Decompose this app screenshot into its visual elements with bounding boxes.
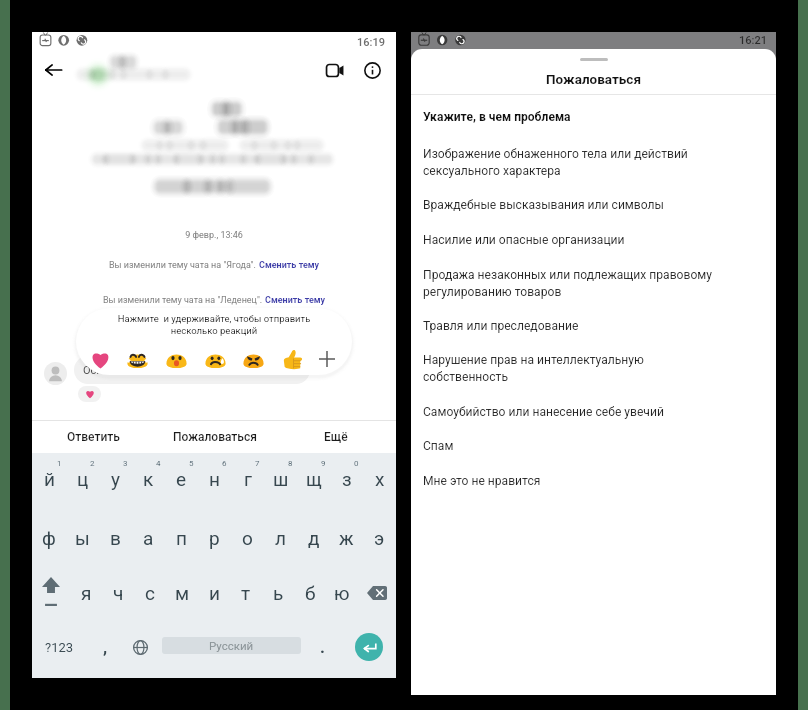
button[interactable]: . xyxy=(307,624,337,670)
staticText: 7 xyxy=(255,459,260,468)
staticText: я xyxy=(81,582,92,604)
staticText: е xyxy=(176,468,187,490)
staticText: 8 xyxy=(288,459,293,468)
staticText: с xyxy=(145,582,155,604)
button[interactable]: т xyxy=(230,571,262,614)
button[interactable]: Нарушение прав на интеллектуальную собст… xyxy=(411,353,776,384)
button[interactable]: ы xyxy=(66,516,99,560)
button[interactable]: 0 xyxy=(330,453,363,505)
button[interactable]: Enter xyxy=(355,633,383,661)
button[interactable]: Reaction xyxy=(89,348,111,370)
button[interactable]: Reaction xyxy=(165,348,187,370)
button[interactable]: Продажа незаконных или подлежащих правов… xyxy=(411,268,776,299)
button[interactable]: Травля или преследование xyxy=(411,319,776,333)
button[interactable]: Backspace xyxy=(358,571,396,614)
staticText: в xyxy=(110,527,121,549)
button[interactable]: 1 xyxy=(32,453,66,505)
button[interactable]: More reactions xyxy=(316,348,338,370)
button[interactable]: Изображение обнаженного тела или действи… xyxy=(411,147,776,178)
button[interactable]: 6 xyxy=(198,453,231,505)
button[interactable]: 4 xyxy=(132,453,165,505)
button[interactable]: Reaction xyxy=(204,348,226,370)
staticText: ?123 xyxy=(45,640,74,655)
button[interactable]: Насилие или опасные организации xyxy=(411,233,776,247)
staticText: Продажа незаконных или подлежащих правов… xyxy=(423,268,724,299)
button[interactable]: х xyxy=(363,453,396,505)
button[interactable]: Спам xyxy=(411,439,776,453)
staticText: 16:19 xyxy=(357,36,385,49)
button[interactable]: ф xyxy=(32,516,66,560)
staticText: Нарушение прав на интеллектуальную собст… xyxy=(423,353,724,384)
button[interactable]: Пожаловаться xyxy=(154,421,275,453)
button[interactable]: о xyxy=(231,516,264,560)
staticText: д xyxy=(308,527,320,549)
button[interactable]: 3 xyxy=(99,453,132,505)
staticText: 3 xyxy=(123,459,128,468)
button[interactable]: а xyxy=(132,516,165,560)
button[interactable]: Враждебные высказывания или символы xyxy=(411,198,776,212)
button[interactable]: д xyxy=(297,516,330,560)
button[interactable]: с xyxy=(134,571,166,614)
staticText: й xyxy=(44,468,55,490)
button[interactable]: б xyxy=(294,571,326,614)
button[interactable]: Ответить xyxy=(32,421,154,453)
button[interactable]: Самоубийство или нанесение себе увечий xyxy=(411,405,776,419)
button[interactable]: ю xyxy=(326,571,358,614)
button[interactable]: 8 xyxy=(264,453,297,505)
button[interactable]: Укажите, в чем проблема xyxy=(411,110,776,124)
staticText: Вы изменили тему чата на "Ягода". xyxy=(109,260,259,271)
button[interactable]: Сменить тему xyxy=(265,295,326,306)
button[interactable]: Back xyxy=(37,54,69,86)
button[interactable]: Русский xyxy=(162,637,301,654)
staticText: 5 xyxy=(189,459,194,468)
staticText: у xyxy=(111,468,120,490)
button[interactable]: в xyxy=(99,516,132,560)
button[interactable]: Reaction xyxy=(126,348,148,370)
staticText: ш xyxy=(273,468,289,490)
staticText: Пожаловаться xyxy=(411,71,776,87)
button[interactable]: Сменить тему xyxy=(259,260,320,271)
button[interactable]: 7 xyxy=(231,453,264,505)
button[interactable]: Video call xyxy=(319,54,351,86)
staticText: Нажмите и удерживайте, чтобы отправить н… xyxy=(76,313,352,336)
button[interactable]: , xyxy=(90,624,120,670)
button[interactable]: ж xyxy=(330,516,363,560)
staticText: Насилие или опасные организации xyxy=(423,233,625,247)
staticText: Русский xyxy=(209,639,254,652)
staticText: Изображение обнаженного тела или действи… xyxy=(423,147,724,178)
button[interactable]: 9 xyxy=(297,453,330,505)
button[interactable]: 2 xyxy=(66,453,99,505)
button[interactable]: Мне это не нравится xyxy=(411,474,776,488)
button[interactable]: э xyxy=(363,516,396,560)
button[interactable]: ?123 xyxy=(41,624,77,670)
staticText: 2 xyxy=(90,459,95,468)
staticText: Сменить тему xyxy=(265,295,326,306)
button[interactable]: Reaction xyxy=(282,348,304,370)
button[interactable]: я xyxy=(70,571,102,614)
button[interactable]: Reaction xyxy=(242,348,264,370)
button[interactable]: п xyxy=(165,516,198,560)
staticText: 0 xyxy=(354,459,359,468)
staticText: Спам xyxy=(423,439,454,453)
staticText: п xyxy=(176,527,187,549)
button[interactable]: м xyxy=(166,571,198,614)
staticText: т xyxy=(241,582,251,604)
button[interactable]: и xyxy=(198,571,230,614)
button[interactable]: ч xyxy=(102,571,134,614)
button[interactable]: Ещё xyxy=(275,421,396,453)
button[interactable]: р xyxy=(198,516,231,560)
button[interactable]: Shift xyxy=(32,571,70,614)
button[interactable]: 5 xyxy=(165,453,198,505)
staticText: Ос. xyxy=(83,364,100,377)
staticText: э xyxy=(374,527,385,549)
staticText: , xyxy=(103,637,108,657)
staticText: . xyxy=(320,637,325,657)
button[interactable]: Change language xyxy=(125,624,155,670)
staticText: х xyxy=(375,468,385,490)
staticText: о xyxy=(242,527,253,549)
button[interactable]: л xyxy=(264,516,297,560)
button[interactable]: ь xyxy=(262,571,294,614)
staticText: Травля или преследование xyxy=(423,319,579,333)
staticText: Мне это не нравится xyxy=(423,474,541,488)
button[interactable]: Info xyxy=(356,54,388,86)
